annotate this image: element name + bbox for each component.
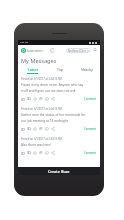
button[interactable]: Star	[33, 127, 37, 131]
button[interactable]: Comment	[45, 151, 49, 155]
staticText: Posted on 5/1/2017 at 2:34:15 PM	[21, 107, 62, 111]
button[interactable]: Nothing 4 Get	[68, 48, 89, 53]
staticText: Gather men the status of her mermaids fo…	[21, 113, 86, 117]
button[interactable]: Posted on 5/1/2017 at 2:34:15 PM	[18, 74, 100, 104]
button[interactable]: Top	[46, 67, 73, 74]
button[interactable]: Like	[21, 151, 25, 155]
button[interactable]: Star	[33, 151, 37, 155]
staticText: My Messages	[21, 57, 57, 65]
staticText: 1:24 PM	[20, 41, 29, 44]
button[interactable]: Dislike	[27, 127, 31, 131]
button[interactable]: Dislike	[27, 97, 31, 101]
staticText: our Job meeting at 13 midnight	[21, 119, 68, 123]
button[interactable]: Flag	[39, 127, 43, 131]
button[interactable]: Like	[21, 97, 25, 101]
staticText: Comment	[84, 127, 97, 131]
button[interactable]: Flag	[39, 97, 43, 101]
staticText: Nothing 4 Get	[68, 49, 86, 53]
button[interactable]: Comment	[45, 127, 49, 131]
button[interactable]: Share	[51, 127, 55, 131]
button[interactable]: Like	[21, 127, 25, 131]
button[interactable]: Share	[51, 151, 55, 155]
staticText: Posted on 5/1/2017 at 2:34:15 PM	[21, 77, 62, 81]
button[interactable]: Latest	[18, 67, 46, 74]
button[interactable]: Posted on 5/1/2017 at 2:34:15 PM	[18, 104, 100, 134]
button[interactable]: Posted on 5/1/2017 at 2:34:15 PM	[18, 134, 100, 158]
staticText: Nearby	[81, 67, 93, 72]
staticText: Posted on 5/1/2017 at 2:34:15 PM	[21, 137, 62, 141]
staticText: Comment	[84, 151, 97, 155]
button[interactable]: Nearby	[73, 67, 100, 74]
staticText: Top	[57, 67, 63, 72]
staticText: Comment	[84, 97, 97, 101]
button[interactable]: Refresh	[50, 48, 55, 53]
button[interactable]: Flag	[39, 151, 43, 155]
staticText: buzzrooms	[27, 49, 43, 53]
staticText: Pizzas in my drum room. Anyone who say	[21, 83, 84, 87]
button[interactable]: Comment	[45, 97, 49, 101]
staticText: stuff and figure out me does not ask	[21, 89, 76, 93]
button[interactable]: Share	[51, 97, 55, 101]
button[interactable]: Star	[33, 97, 37, 101]
button[interactable]: Profile	[93, 48, 97, 52]
staticText: Also there was here!	[21, 143, 52, 147]
staticText: Latest	[28, 67, 38, 72]
button[interactable]: Dislike	[27, 151, 31, 155]
button[interactable]: Create Buzz	[18, 167, 100, 175]
staticText: Create Buzz	[48, 169, 70, 174]
button[interactable]: buzzrooms	[21, 48, 43, 53]
